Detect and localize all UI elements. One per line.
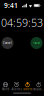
button[interactable]: Stopwatch — [33, 82, 44, 91]
button[interactable]: Cancel — [1, 37, 13, 49]
staticText: Timers — [23, 87, 32, 91]
staticText: Stopwatch — [33, 87, 44, 91]
button[interactable]: Pause — [30, 37, 42, 49]
staticText: 9:41 — [4, 1, 18, 10]
staticText: Cancel — [3, 41, 12, 45]
staticText: Pause — [32, 41, 40, 45]
button[interactable]: Alarms — [11, 82, 22, 91]
staticText: World — [1, 87, 9, 91]
staticText: 04:59:53 — [1, 15, 43, 30]
staticText: Alarms — [11, 87, 21, 91]
button[interactable]: Timers — [22, 82, 33, 91]
button[interactable]: World — [0, 82, 11, 91]
